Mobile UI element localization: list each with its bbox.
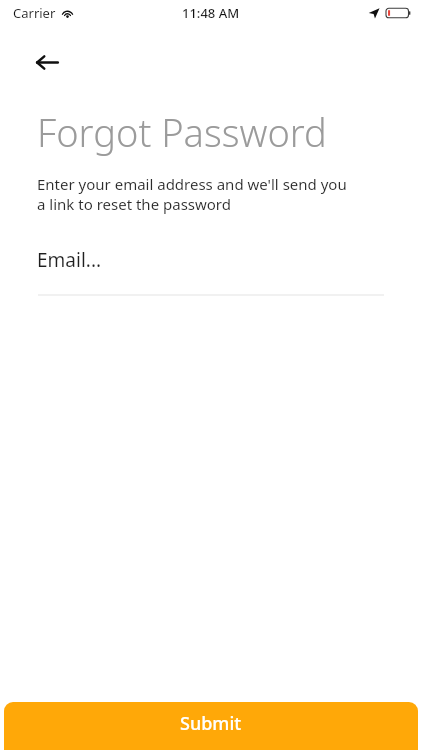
button[interactable]: Email... [0, 247, 422, 296]
staticText: Submit [180, 711, 242, 736]
staticText: Carrier [13, 4, 56, 22]
staticText: Enter your email address and we'll send … [37, 174, 347, 214]
staticText: 11:48 AM [182, 4, 240, 22]
button[interactable]: Back [24, 39, 70, 85]
staticText: Email... [37, 247, 102, 273]
button[interactable]: Submit [4, 702, 418, 750]
staticText: Forgot Password [37, 106, 327, 158]
